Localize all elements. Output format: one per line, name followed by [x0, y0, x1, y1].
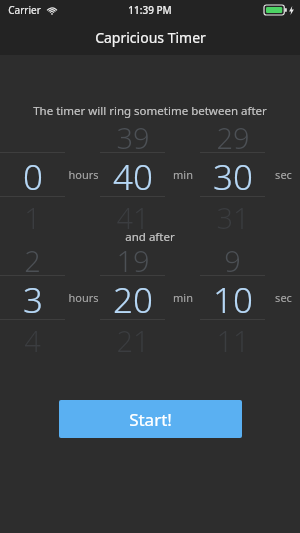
staticText: hours — [68, 290, 99, 305]
staticText: hours — [68, 167, 99, 182]
staticText: min — [173, 290, 193, 305]
staticText: 11 — [216, 321, 250, 355]
staticText: The timer will ring sometime between aft… — [33, 103, 267, 119]
staticText: 3 — [23, 276, 43, 319]
staticText: sec — [275, 167, 292, 182]
staticText: Capricious Timer — [95, 28, 206, 47]
staticText: 40 — [113, 153, 153, 196]
staticText: 11:39 PM — [128, 3, 172, 17]
staticText: 0 — [23, 153, 43, 196]
staticText: min — [173, 167, 193, 182]
staticText: 41 — [116, 198, 150, 232]
button[interactable]: 0 — [0, 153, 65, 196]
staticText: 39 — [116, 118, 150, 152]
button[interactable]: 10 — [200, 276, 265, 319]
staticText: 20 — [113, 276, 153, 319]
staticText: 19 — [116, 241, 150, 275]
button[interactable]: 20 — [100, 276, 165, 319]
staticText: 9 — [224, 241, 241, 275]
staticText: 1 — [24, 198, 41, 232]
staticText: and after — [125, 229, 175, 245]
staticText: 30 — [213, 153, 253, 196]
button[interactable]: 3 — [0, 276, 65, 319]
staticText: 21 — [116, 321, 150, 355]
staticText: 10 — [213, 276, 253, 319]
staticText: sec — [275, 290, 292, 305]
button[interactable]: 30 — [200, 153, 265, 196]
button[interactable]: Start timer — [59, 400, 242, 438]
staticText: Start! — [129, 408, 172, 431]
staticText: 29 — [216, 118, 250, 152]
staticText: 31 — [216, 198, 250, 232]
staticText: Carrier — [8, 3, 41, 17]
button[interactable]: 40 — [100, 153, 165, 196]
staticText: 4 — [24, 321, 41, 355]
staticText: 2 — [24, 241, 41, 275]
